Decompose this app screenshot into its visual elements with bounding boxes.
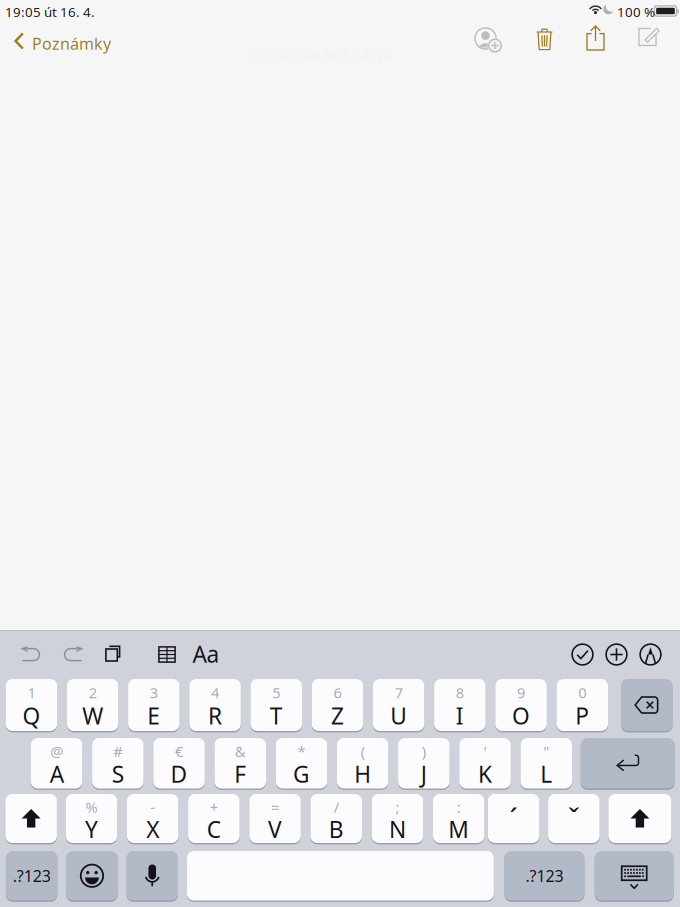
button[interactable]: ˇ — [548, 794, 600, 843]
button[interactable]: * — [276, 738, 327, 788]
button[interactable]: 5 — [250, 679, 302, 731]
button[interactable]: .?123 — [6, 851, 57, 900]
staticText: = — [271, 797, 279, 817]
button[interactable] — [126, 851, 178, 900]
button[interactable]: € — [153, 738, 205, 788]
button[interactable]: & — [214, 738, 266, 788]
button[interactable]: ; — [372, 794, 423, 843]
button[interactable]: @ — [31, 738, 82, 788]
staticText: F — [234, 759, 246, 789]
button[interactable] — [581, 738, 675, 788]
button[interactable] — [595, 851, 674, 900]
button[interactable]: Markup — [639, 643, 662, 666]
staticText: € — [175, 742, 183, 761]
staticText: B — [329, 814, 344, 844]
button[interactable]: Compose — [638, 27, 660, 51]
button[interactable] — [5, 794, 57, 843]
button[interactable]: Table — [158, 646, 176, 663]
staticText: D — [171, 759, 188, 789]
staticText: K — [478, 759, 492, 789]
button[interactable]: Insert — [605, 643, 628, 666]
staticText: Q — [22, 701, 40, 731]
button[interactable] — [608, 794, 671, 843]
button[interactable]: % — [66, 794, 117, 843]
staticText: " — [543, 742, 549, 761]
button[interactable]: / — [310, 794, 362, 843]
staticText: 5 — [272, 683, 280, 702]
button[interactable]: 4 — [189, 679, 241, 731]
staticText: + — [210, 797, 218, 817]
staticText: L — [540, 759, 552, 789]
staticText: ˇ — [568, 799, 580, 838]
staticText: G — [293, 759, 310, 789]
button[interactable]: - — [127, 794, 178, 843]
button[interactable]: Poznámky — [14, 27, 106, 57]
button[interactable]: 6 — [312, 679, 363, 731]
staticText: 8 — [456, 683, 464, 702]
button[interactable]: 7 — [373, 679, 424, 731]
button[interactable]: 1 — [6, 679, 57, 731]
staticText: ; — [395, 797, 399, 817]
button[interactable]: ( — [337, 738, 388, 788]
staticText: @ — [50, 742, 63, 761]
button[interactable]: .?123 — [504, 851, 584, 900]
button[interactable]: ) — [398, 738, 450, 788]
staticText: ´ — [510, 799, 518, 838]
button[interactable]: = — [249, 794, 301, 843]
staticText: S — [112, 759, 124, 789]
staticText: .?123 — [13, 865, 51, 886]
button[interactable] — [621, 679, 672, 731]
button[interactable]: 3 — [128, 679, 180, 731]
button[interactable]: ´ — [488, 794, 539, 843]
button[interactable]: 9 — [495, 679, 547, 731]
staticText: J — [421, 759, 427, 789]
button[interactable]: Share — [586, 24, 605, 51]
staticText: # — [113, 742, 122, 761]
staticText: C — [207, 814, 221, 844]
staticText: ( — [361, 742, 365, 761]
staticText: : — [457, 797, 461, 817]
staticText: .?123 — [525, 865, 563, 886]
staticText: 0 — [578, 683, 586, 702]
button[interactable]: Add People — [474, 27, 502, 53]
staticText: * — [297, 742, 305, 761]
button[interactable]: " — [520, 738, 572, 788]
staticText: / — [334, 797, 339, 817]
button[interactable]: Paste — [105, 645, 121, 662]
button[interactable]: 0 — [556, 679, 608, 731]
button[interactable]: Checklist — [571, 643, 594, 666]
staticText: T — [270, 701, 283, 731]
staticText: Poznámky — [32, 33, 111, 54]
staticText: ) — [422, 742, 426, 761]
staticText: 7 — [395, 683, 403, 702]
staticText: út 16. 4. — [44, 3, 95, 21]
staticText: 19:05 — [5, 3, 41, 21]
staticText: E — [147, 701, 160, 731]
staticText: 3 — [150, 683, 158, 702]
staticText: A — [50, 759, 64, 789]
staticText: 1 — [27, 683, 35, 702]
staticText: P — [575, 701, 589, 731]
button[interactable] — [66, 851, 118, 900]
staticText: N — [389, 814, 406, 844]
staticText: - — [150, 797, 155, 817]
button[interactable]: Redo — [62, 646, 83, 664]
staticText: W — [82, 701, 103, 731]
button[interactable]: 2 — [67, 679, 118, 731]
staticText: 100 % — [617, 3, 655, 21]
staticText: & — [235, 742, 246, 761]
button[interactable]: Delete — [536, 27, 553, 51]
staticText: Y — [85, 814, 98, 844]
button[interactable]: + — [188, 794, 240, 843]
button[interactable]: : — [433, 794, 484, 843]
staticText: R — [208, 701, 222, 731]
button[interactable]: ' — [459, 738, 511, 788]
button[interactable]: Aa — [192, 643, 220, 665]
staticText: V — [268, 814, 282, 844]
staticText: 9 — [517, 683, 525, 702]
button[interactable]: 8 — [434, 679, 486, 731]
button[interactable]: # — [92, 738, 144, 788]
button[interactable]: Undo — [21, 646, 42, 664]
